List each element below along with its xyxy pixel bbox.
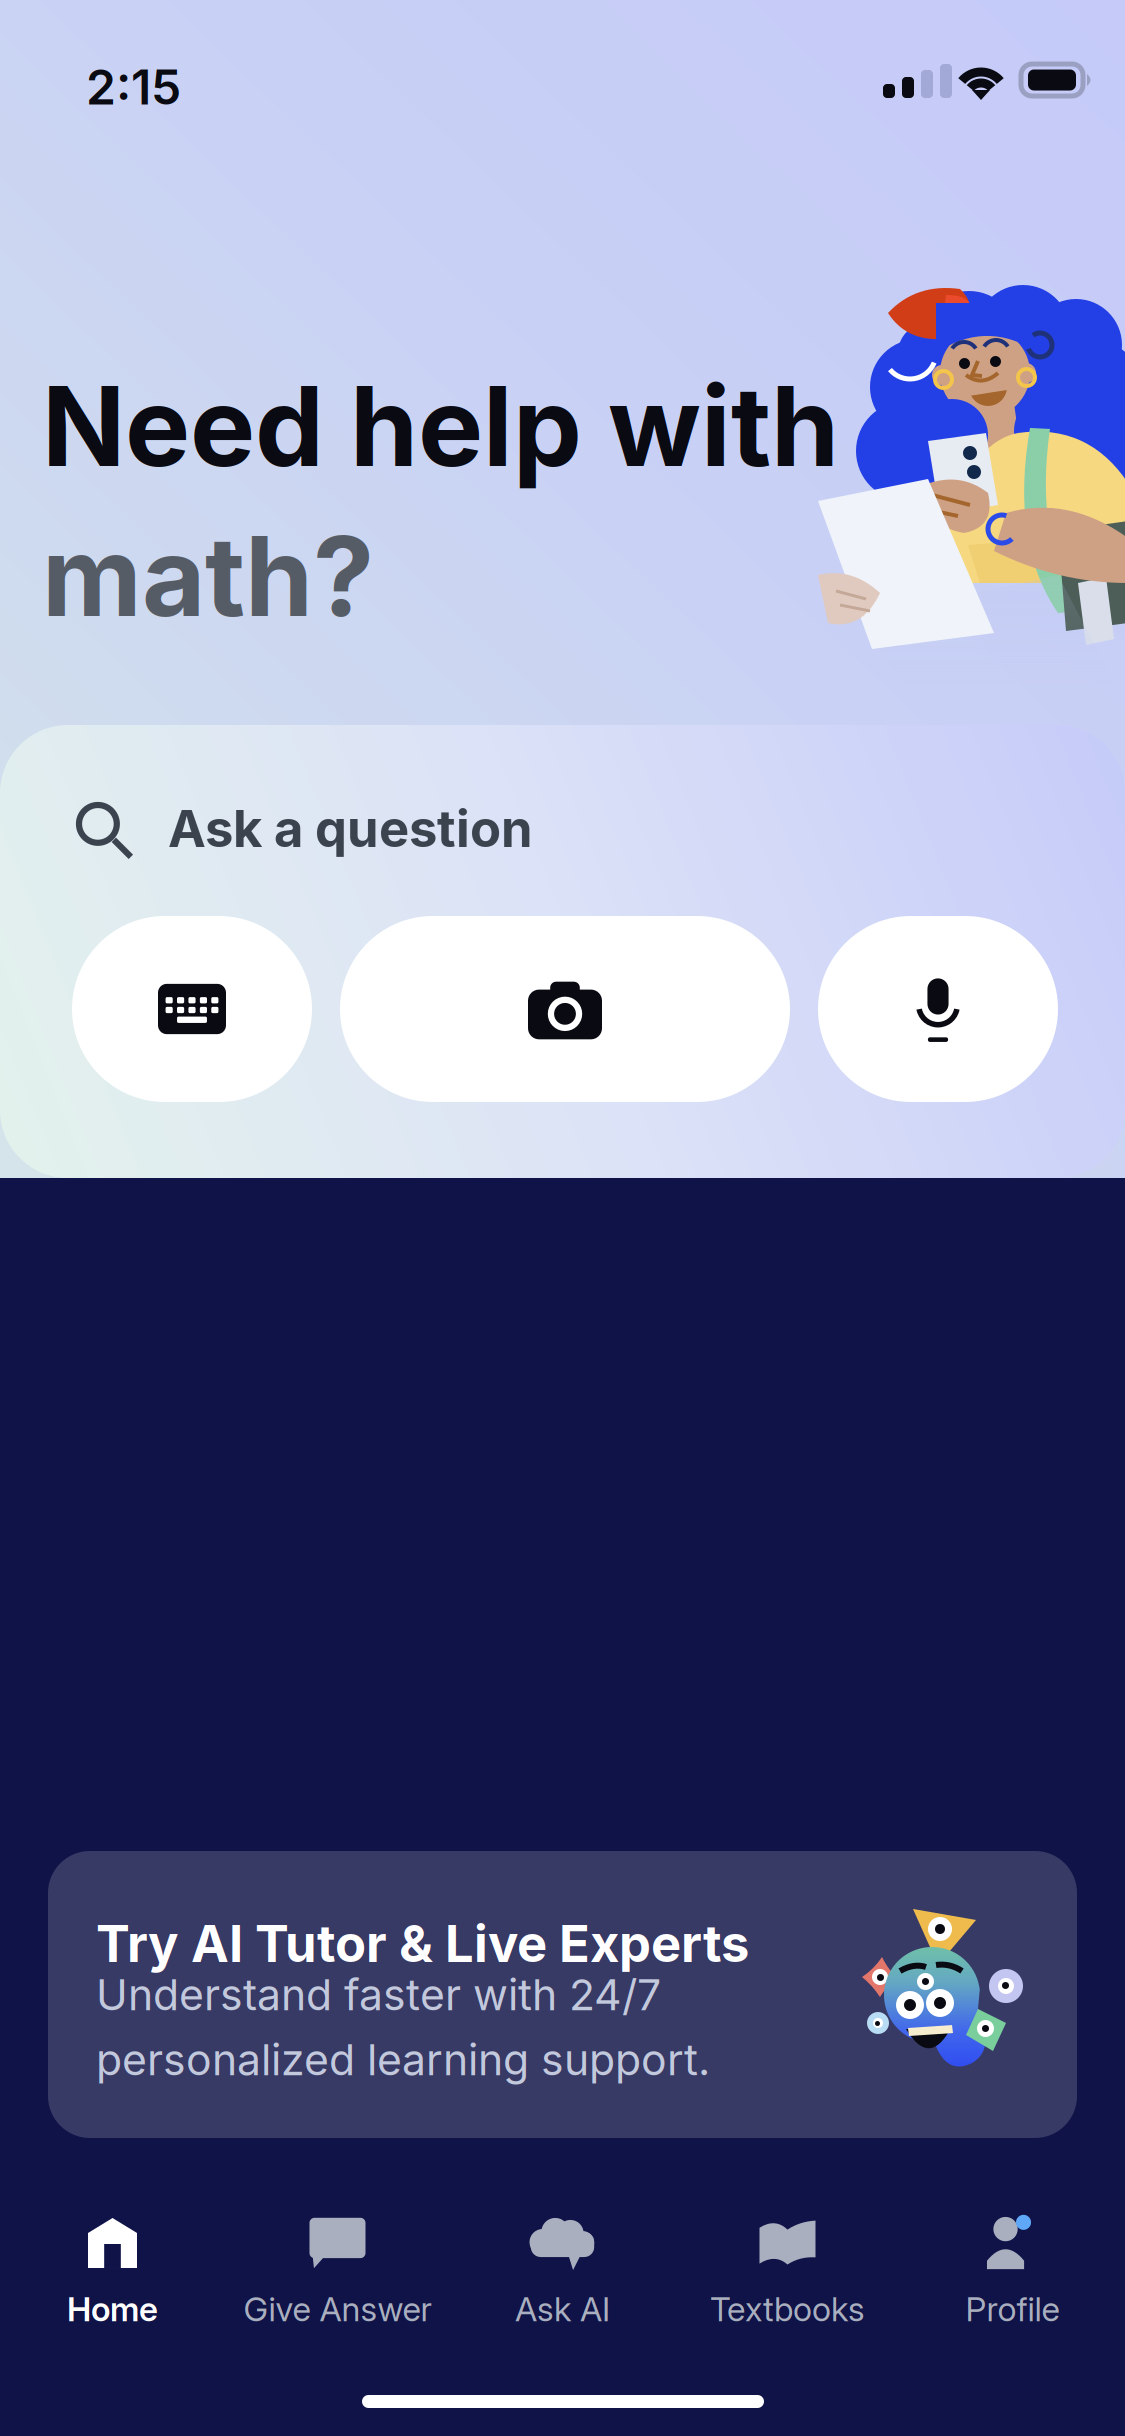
button[interactable]: Ask AI <box>450 2215 675 2343</box>
button[interactable]: Type a question <box>72 916 312 1102</box>
button[interactable]: Try AI Tutor & Live Experts <box>48 1851 1077 2138</box>
staticText: Understand faster with 24/7 <box>96 1969 661 2021</box>
staticText: Give Answer <box>243 2289 431 2329</box>
staticText: 2:15 <box>86 58 181 116</box>
button[interactable]: Home <box>0 2215 225 2343</box>
staticText: Profile <box>965 2289 1059 2329</box>
button[interactable]: Scan with camera <box>340 916 790 1102</box>
staticText: personalized learning support. <box>96 2034 710 2086</box>
button[interactable]: Profile <box>900 2215 1125 2343</box>
button[interactable]: Give Answer <box>225 2215 450 2343</box>
button[interactable]: Textbooks <box>675 2215 900 2343</box>
staticText: Home <box>67 2289 158 2329</box>
staticText: Ask AI <box>515 2289 610 2329</box>
staticText: Need help with <box>42 360 839 492</box>
button[interactable]: Ask with voice <box>818 916 1058 1102</box>
staticText: Try AI Tutor & Live Experts <box>96 1913 749 1974</box>
staticText: Ask a question <box>168 798 533 859</box>
staticText: Textbooks <box>710 2289 865 2329</box>
staticText: math? <box>42 510 374 642</box>
